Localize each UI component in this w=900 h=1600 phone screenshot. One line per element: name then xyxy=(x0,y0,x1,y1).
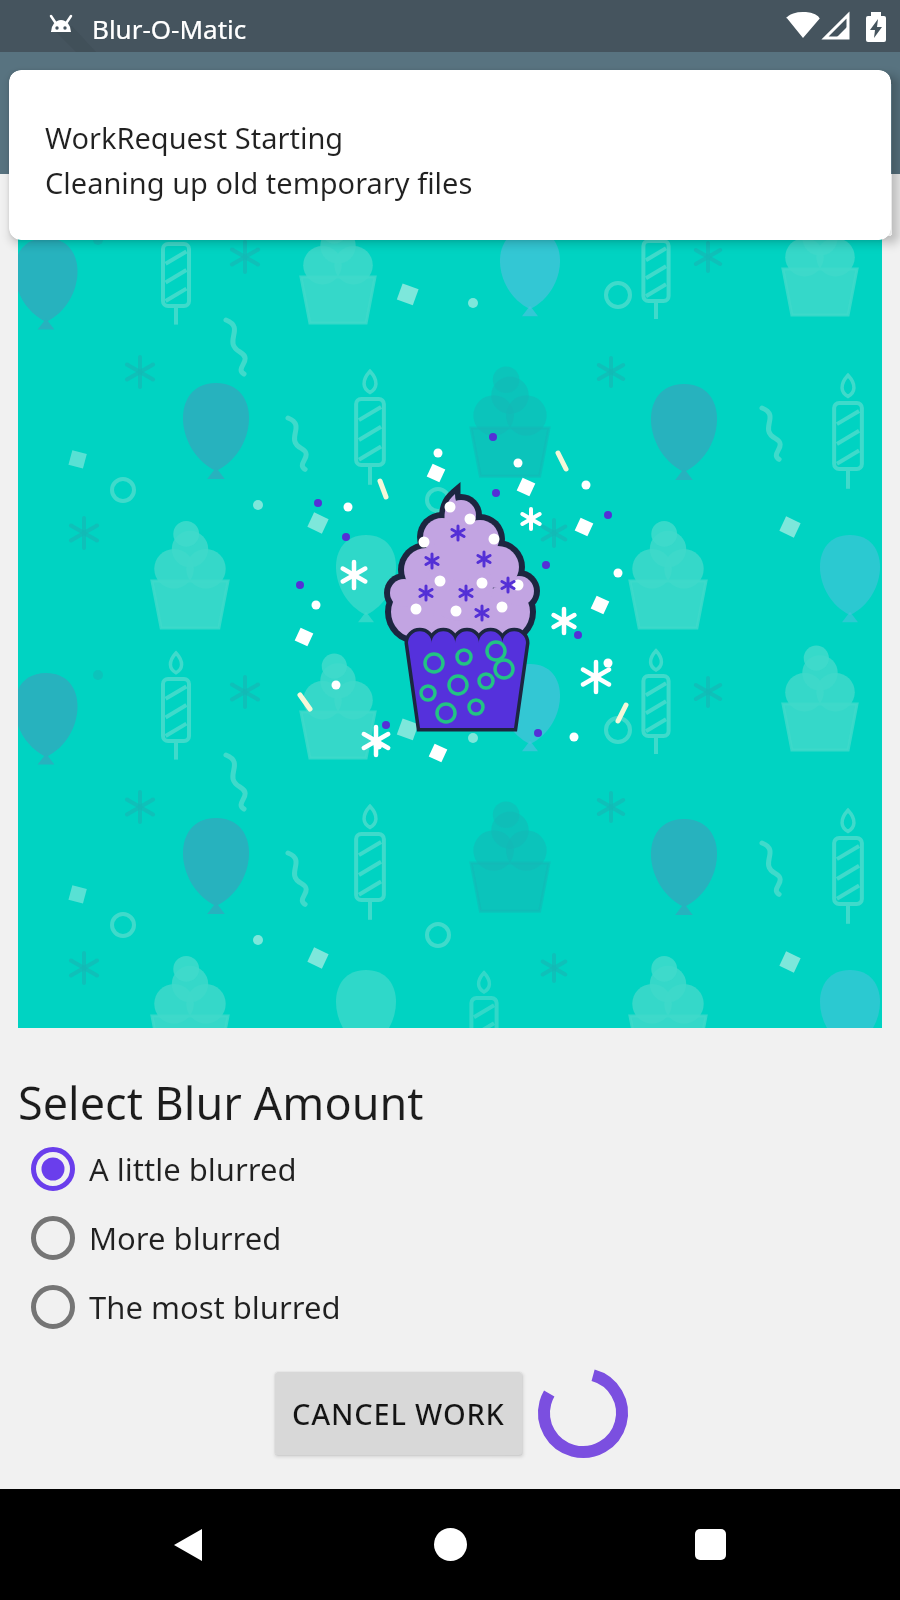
staticText: WorkRequest Starting xyxy=(45,118,344,157)
button[interactable] xyxy=(400,1497,500,1592)
button[interactable] xyxy=(660,1497,760,1592)
staticText: A little blurred xyxy=(89,1148,297,1190)
button[interactable]: CANCEL WORK xyxy=(275,1372,522,1455)
button[interactable]: WorkRequest Starting xyxy=(9,70,891,240)
button[interactable]: The most blurred xyxy=(32,1286,341,1328)
staticText: More blurred xyxy=(89,1217,282,1259)
staticText: Select Blur Amount xyxy=(18,1072,424,1133)
staticText: CANCEL WORK xyxy=(292,1394,505,1433)
button[interactable]: A little blurred xyxy=(32,1148,297,1190)
button[interactable]: More blurred xyxy=(32,1217,282,1259)
staticText: Cleaning up old temporary files xyxy=(45,163,473,202)
staticText: Blur-O-Matic xyxy=(92,11,247,46)
staticText: The most blurred xyxy=(89,1286,341,1328)
button[interactable] xyxy=(138,1497,238,1592)
